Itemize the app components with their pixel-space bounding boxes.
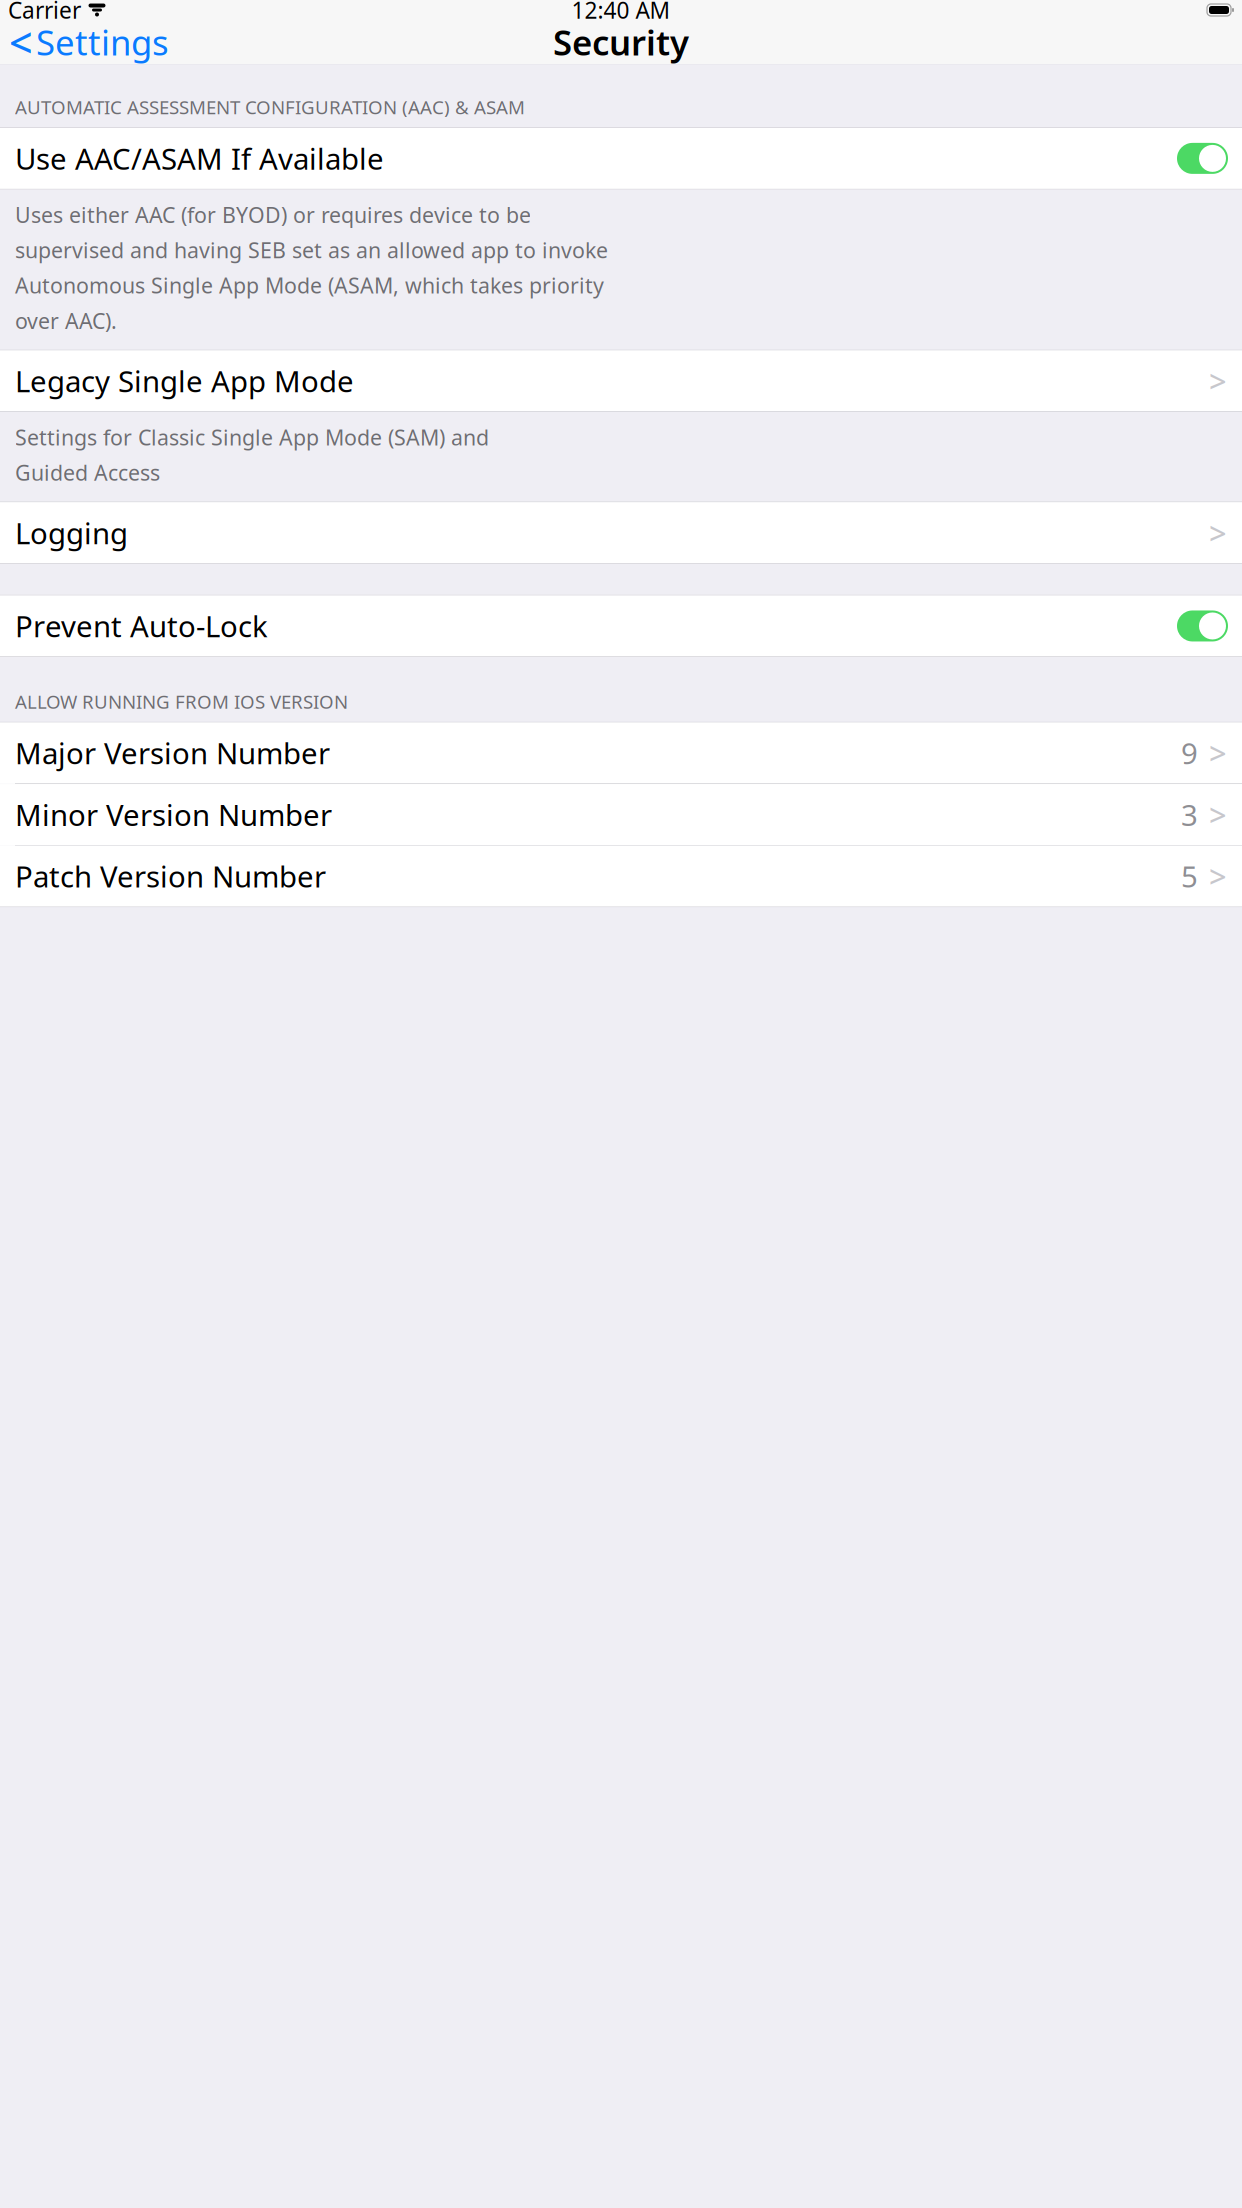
button[interactable]: Minor Version Number	[0, 784, 1242, 845]
staticText: AUTOMATIC ASSESSMENT CONFIGURATION (AAC)…	[15, 94, 525, 119]
staticText: 12:40 AM	[571, 0, 670, 25]
staticText: Prevent Auto-Lock	[15, 606, 268, 645]
staticText: Patch Version Number	[15, 857, 326, 896]
staticText: Autonomous Single App Mode (ASAM, which …	[15, 271, 604, 299]
staticText: Minor Version Number	[15, 795, 332, 834]
staticText: Logging	[15, 513, 128, 552]
staticText: >	[1209, 733, 1227, 773]
button[interactable]: Major Version Number	[0, 722, 1242, 783]
staticText: >	[1209, 360, 1227, 401]
staticText: >	[1209, 512, 1227, 553]
staticText: Major Version Number	[15, 733, 330, 772]
button[interactable]: <	[0, 20, 181, 64]
button[interactable]: Use AAC/ASAM If Available	[0, 128, 1242, 189]
button[interactable]: Patch Version Number	[0, 846, 1242, 907]
staticText: 9	[1181, 733, 1198, 772]
button[interactable]: Legacy Single App Mode	[0, 350, 1242, 411]
staticText: ALLOW RUNNING FROM IOS VERSION	[15, 689, 348, 714]
staticText: 5	[1181, 857, 1198, 896]
staticText: Carrier	[8, 0, 81, 25]
staticText: Legacy Single App Mode	[15, 361, 354, 400]
staticText: Guided Access	[15, 458, 160, 487]
staticText: >	[1209, 856, 1227, 896]
staticText: Settings for Classic Single App Mode (SA…	[15, 423, 489, 451]
staticText: <	[9, 15, 33, 69]
staticText: >	[1209, 794, 1227, 835]
staticText: over AAC).	[15, 306, 117, 335]
staticText: Security	[553, 19, 689, 65]
staticText: Settings	[36, 19, 169, 65]
button[interactable]: Prevent Auto-Lock	[0, 595, 1242, 656]
staticText: Uses either AAC (for BYOD) or requires d…	[15, 200, 531, 229]
staticText: 3	[1181, 795, 1198, 834]
button[interactable]: Logging	[0, 502, 1242, 563]
staticText: Use AAC/ASAM If Available	[15, 139, 384, 178]
staticText: supervised and having SEB set as an allo…	[15, 236, 608, 264]
